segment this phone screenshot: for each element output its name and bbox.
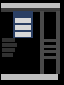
button[interactable]: Toolbar: [1, 8, 60, 12]
